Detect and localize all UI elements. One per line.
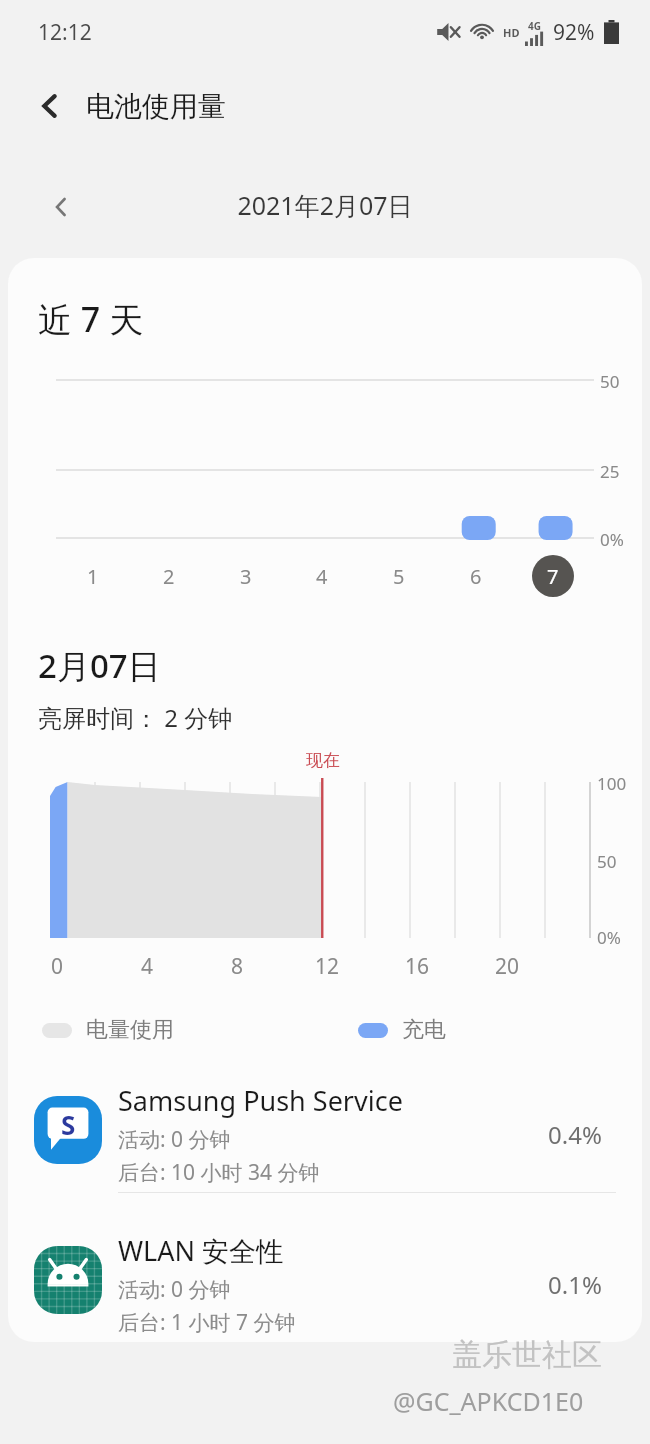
staticText: 1	[87, 563, 99, 590]
staticText: 25	[600, 460, 620, 483]
button[interactable]: 4	[301, 555, 343, 597]
staticText: 亮屏时间： 2 分钟	[38, 701, 233, 734]
staticText: 20	[492, 952, 522, 981]
button[interactable]: 充电	[358, 1016, 446, 1044]
staticText: Samsung Push Service	[118, 1082, 403, 1119]
button[interactable]: 7	[532, 555, 574, 597]
staticText: 活动: 0 分钟	[118, 1125, 231, 1154]
staticText: 0	[42, 952, 72, 981]
staticText: 0%	[597, 926, 621, 949]
staticText: HD	[503, 25, 520, 40]
staticText: 4	[316, 563, 328, 590]
button[interactable]: WLAN 安全性	[8, 1216, 642, 1340]
button[interactable]: 3	[225, 555, 267, 597]
button[interactable]: S	[8, 1066, 642, 1190]
staticText: 后台: 1 小时 7 分钟	[118, 1308, 296, 1337]
button[interactable]: 6	[455, 555, 497, 597]
staticText: 12	[312, 952, 342, 981]
staticText: 电池使用量	[86, 89, 226, 124]
staticText: 0.1%	[548, 1268, 602, 1301]
staticText: 92%	[553, 18, 595, 47]
staticText: 4G	[528, 19, 541, 33]
button[interactable]: 2	[148, 555, 190, 597]
staticText: 活动: 0 分钟	[118, 1275, 231, 1304]
staticText: 5	[393, 563, 405, 590]
staticText: 50	[597, 850, 617, 873]
staticText: 2021年2月07日	[0, 188, 650, 222]
staticText: 0%	[600, 528, 624, 551]
staticText: S	[61, 1107, 76, 1142]
button[interactable]: 电量使用	[42, 1016, 174, 1044]
staticText: 2	[163, 563, 175, 590]
staticText: 充电	[402, 1016, 446, 1044]
staticText: WLAN 安全性	[118, 1232, 284, 1269]
staticText: 16	[402, 952, 432, 981]
staticText: 现在	[306, 750, 340, 771]
staticText: 12:12	[38, 18, 92, 47]
staticText: @GC_APKCD1E0	[393, 1384, 584, 1418]
staticText: 2月07日	[38, 643, 161, 688]
button[interactable]: 1	[72, 555, 114, 597]
staticText: 4	[132, 952, 162, 981]
staticText: 6	[470, 563, 482, 590]
staticText: 0.4%	[548, 1118, 602, 1151]
staticText: 50	[600, 370, 620, 393]
staticText: 近 7 天	[38, 296, 144, 342]
staticText: 7	[547, 563, 559, 590]
staticText: 3	[240, 563, 252, 590]
staticText: 盖乐世社区	[452, 1336, 602, 1374]
staticText: 电量使用	[86, 1016, 174, 1044]
staticText: 8	[222, 952, 252, 981]
button[interactable]: Back	[22, 78, 78, 134]
staticText: 后台: 10 小时 34 分钟	[118, 1158, 320, 1187]
button[interactable]: Previous day	[34, 180, 88, 234]
staticText: 100	[597, 772, 627, 795]
button[interactable]: 5	[378, 555, 420, 597]
